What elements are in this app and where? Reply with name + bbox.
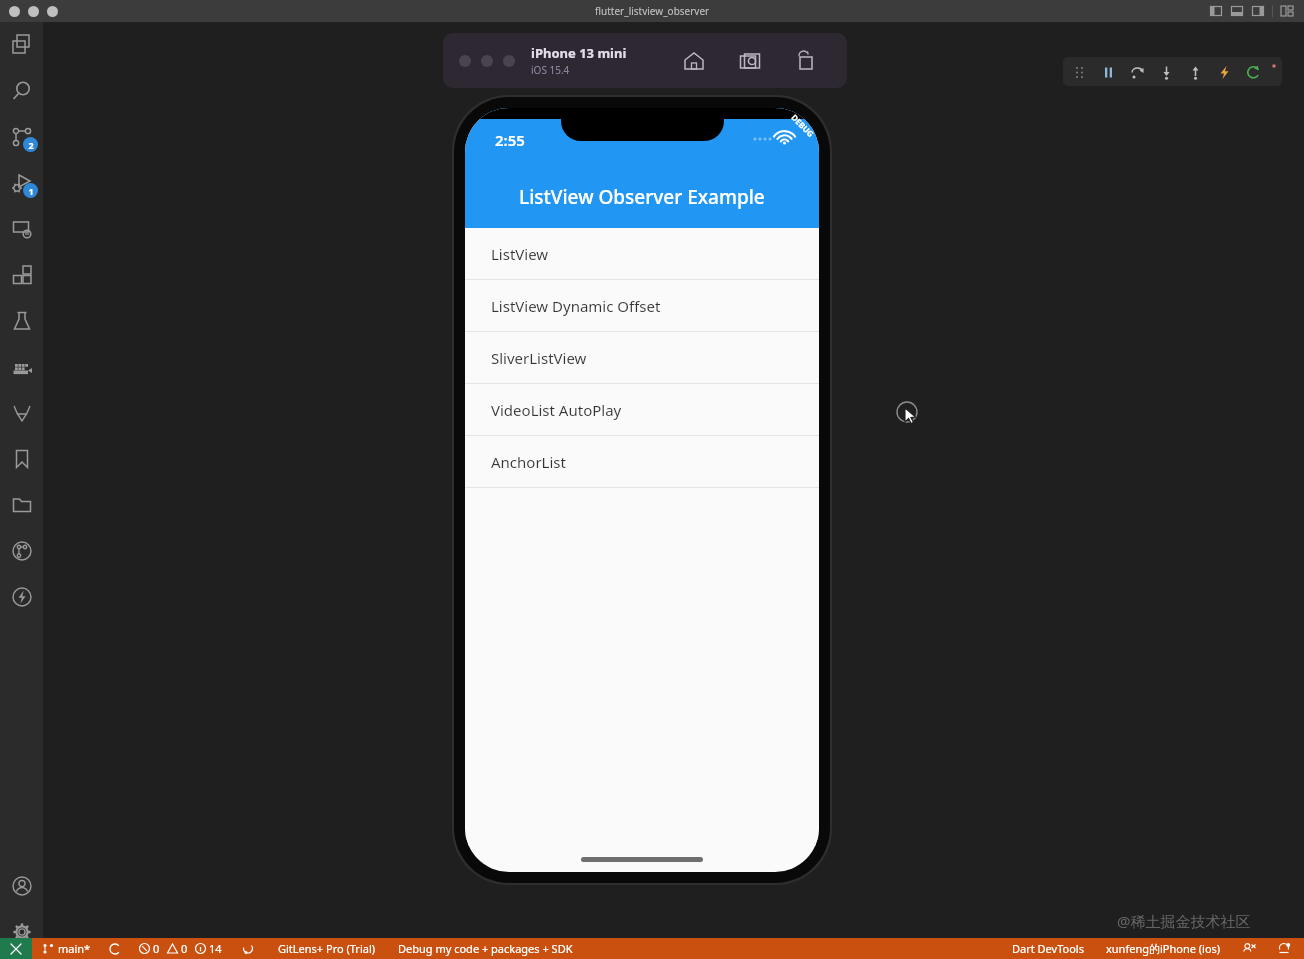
staticText: DEBUG: [789, 112, 817, 139]
button[interactable]: Activity bar item: [0, 436, 43, 482]
button[interactable]: Hot restart: [1244, 63, 1262, 81]
staticText: iOS 15.4: [531, 63, 570, 77]
button[interactable]: Toggle panel: [1251, 4, 1265, 18]
button[interactable]: ListView Dynamic Offset: [465, 280, 819, 332]
button[interactable]: Activity bar item: [0, 344, 43, 390]
button[interactable]: Synchronize changes: [106, 941, 124, 957]
button[interactable]: Live Share: [239, 941, 257, 957]
staticText: ListView Observer Example: [519, 184, 765, 210]
button[interactable]: Toggle panel: [1230, 4, 1244, 18]
button[interactable]: Pause: [1099, 63, 1117, 81]
button[interactable]: 0 errors 0 warnings 14 infos: [136, 939, 225, 958]
button[interactable]: Activity bar item: [0, 298, 43, 344]
button[interactable]: Drag handle: [1070, 63, 1088, 81]
button[interactable]: Simulator control: [459, 55, 471, 67]
button[interactable]: Activity bar item: [0, 574, 43, 620]
button[interactable]: Simulator control: [503, 55, 515, 67]
button[interactable]: Activity bar item: [0, 390, 43, 436]
button[interactable]: Branch main: [40, 939, 94, 958]
button[interactable]: Window control: [47, 6, 58, 17]
staticText: @稀土掘金技术社区: [1117, 911, 1251, 931]
staticText: ListView: [491, 244, 549, 264]
staticText: 0: [181, 941, 188, 956]
button[interactable]: Notifications: [1275, 940, 1294, 957]
button[interactable]: VideoList AutoPlay: [465, 384, 819, 436]
button[interactable]: Home: [679, 46, 709, 76]
staticText: 2:55: [495, 130, 525, 150]
button[interactable]: Step over: [1128, 63, 1146, 81]
button[interactable]: Activity bar item: [0, 482, 43, 528]
button[interactable]: Activity bar item: [0, 68, 43, 114]
button[interactable]: Debug my code plus packages plus SDK: [395, 939, 576, 958]
button[interactable]: Activity bar item: [0, 206, 43, 252]
button[interactable]: Step into: [1157, 63, 1175, 81]
button[interactable]: Window control: [28, 6, 39, 17]
button[interactable]: Remote window: [0, 938, 32, 959]
staticText: iPhone 13 mini: [531, 44, 627, 62]
button[interactable]: Activity bar item: [0, 22, 43, 68]
button[interactable]: Activity bar item: [0, 252, 43, 298]
staticText: Dart DevTools: [1012, 941, 1084, 956]
button[interactable]: Activity bar item: [0, 863, 43, 909]
staticText: Debug my code + packages + SDK: [398, 941, 573, 956]
button[interactable]: Rotate: [791, 46, 821, 76]
button[interactable]: Send feedback: [1240, 940, 1259, 957]
button[interactable]: Selected device: [1103, 939, 1224, 958]
staticText: main*: [58, 941, 91, 956]
button[interactable]: Hot reload: [1215, 63, 1233, 81]
staticText: xunfeng的iPhone (ios): [1106, 941, 1221, 956]
staticText: VideoList AutoPlay: [491, 400, 622, 420]
staticText: 14: [209, 941, 222, 956]
staticText: AnchorList: [491, 452, 566, 472]
staticText: GitLens+ Pro (Trial): [278, 941, 376, 956]
button[interactable]: Screenshot: [735, 46, 765, 76]
button[interactable]: Stop: [1273, 63, 1275, 81]
button[interactable]: Dart DevTools: [1009, 939, 1087, 958]
staticText: 0: [153, 941, 160, 956]
button[interactable]: Window control: [9, 6, 20, 17]
button[interactable]: Simulator control: [481, 55, 493, 67]
staticText: 1: [28, 185, 34, 197]
button[interactable]: Toggle panel: [1209, 4, 1223, 18]
button[interactable]: ListView: [465, 228, 819, 280]
button[interactable]: Activity bar item: [0, 160, 43, 206]
staticText: ListView Dynamic Offset: [491, 296, 661, 316]
staticText: SliverListView: [491, 348, 587, 368]
button[interactable]: Step out: [1186, 63, 1204, 81]
staticText: 2: [28, 139, 34, 151]
button[interactable]: SliverListView: [465, 332, 819, 384]
button[interactable]: Activity bar item: [0, 528, 43, 574]
button[interactable]: Customize layout: [1280, 4, 1294, 18]
staticText: flutter_listview_observer: [595, 4, 710, 18]
button[interactable]: GitLens Pro Trial: [275, 939, 379, 958]
button[interactable]: AnchorList: [465, 436, 819, 488]
button[interactable]: Activity bar item: [0, 909, 43, 955]
button[interactable]: Activity bar item: [0, 114, 43, 160]
